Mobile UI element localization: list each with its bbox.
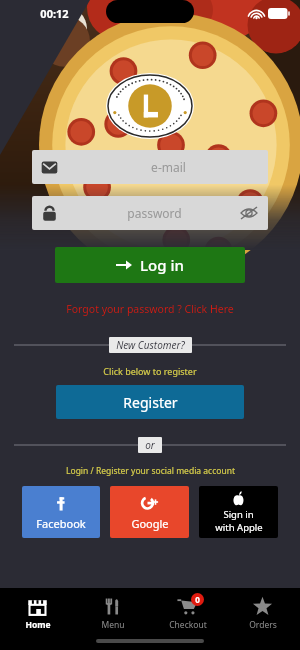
staticText: Click below to register (103, 365, 197, 377)
button[interactable]: Google (110, 486, 189, 538)
button[interactable]: Menu (75, 596, 150, 631)
staticText: Orders (249, 619, 277, 631)
button[interactable]: Checkout (150, 596, 225, 631)
staticText: password (69, 205, 240, 221)
staticText: Forgot your password ? Click Here (66, 302, 234, 316)
staticText: Sign in (223, 508, 254, 521)
staticText: Facebook (36, 516, 86, 531)
button[interactable]: Facebook (22, 486, 100, 538)
button[interactable]: Register (56, 385, 244, 419)
staticText: 00:12 (40, 6, 69, 21)
button[interactable]: Home (0, 596, 75, 631)
staticText: or (145, 438, 155, 452)
staticText: Menu (101, 619, 125, 631)
staticText: 0 (195, 594, 200, 605)
staticText: e-mail (69, 159, 268, 175)
button[interactable]: Log in (55, 247, 245, 283)
staticText: New Customer? (116, 338, 185, 352)
staticText: Checkout (169, 619, 207, 631)
button[interactable]: Orders (225, 596, 300, 631)
staticText: with Apple (215, 521, 263, 534)
button[interactable]: Email (32, 150, 268, 184)
button[interactable]: Password (32, 196, 268, 230)
staticText: Home (25, 619, 51, 631)
other: Show password (240, 206, 258, 220)
button[interactable]: Sign in (199, 486, 278, 538)
staticText: Register (123, 393, 178, 412)
button[interactable]: Forgot your password ? Click Here (0, 302, 300, 316)
staticText: Log in (140, 255, 184, 275)
staticText: Google (131, 516, 169, 531)
staticText: Login / Register your social media accou… (66, 465, 235, 477)
